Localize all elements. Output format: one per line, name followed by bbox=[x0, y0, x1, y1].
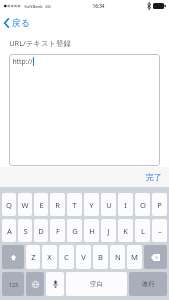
button[interactable]: Z bbox=[26, 245, 40, 269]
button[interactable]: H bbox=[84, 219, 99, 242]
staticText: U bbox=[106, 200, 112, 210]
button[interactable]: Dictation bbox=[46, 272, 64, 296]
button[interactable]: – bbox=[152, 219, 167, 242]
staticText: Y bbox=[89, 200, 94, 210]
button[interactable]: 空白 bbox=[66, 272, 127, 296]
staticText: D bbox=[38, 226, 44, 236]
staticText: 完了 bbox=[146, 172, 162, 182]
button[interactable]: S bbox=[18, 219, 32, 242]
staticText: A bbox=[7, 226, 12, 236]
staticText: E bbox=[39, 200, 44, 210]
staticText: O bbox=[140, 200, 146, 210]
button[interactable]: E bbox=[34, 193, 48, 216]
button[interactable]: http:// bbox=[9, 54, 160, 166]
button[interactable]: X bbox=[42, 245, 57, 269]
button[interactable]: G bbox=[67, 219, 82, 242]
staticText: V bbox=[81, 252, 86, 262]
staticText: Z bbox=[31, 252, 36, 262]
button[interactable]: K bbox=[118, 219, 133, 242]
staticText: X bbox=[47, 252, 52, 262]
button[interactable]: M bbox=[127, 245, 142, 269]
staticText: F bbox=[56, 226, 60, 236]
button[interactable]: N bbox=[110, 245, 125, 269]
staticText: 4G bbox=[45, 3, 51, 9]
staticText: 空白 bbox=[90, 280, 103, 288]
button[interactable]: W bbox=[18, 193, 32, 216]
button[interactable]: Q bbox=[2, 193, 16, 216]
button[interactable]: P bbox=[152, 193, 167, 216]
staticText: H bbox=[89, 226, 95, 236]
button[interactable]: D bbox=[34, 219, 48, 242]
button[interactable]: Backspace bbox=[144, 245, 167, 269]
button[interactable]: T bbox=[67, 193, 82, 216]
staticText: G bbox=[72, 226, 78, 236]
staticText: – bbox=[158, 226, 162, 236]
staticText: W bbox=[21, 200, 29, 210]
staticText: 改行 bbox=[142, 280, 155, 288]
staticText: L bbox=[141, 226, 145, 236]
staticText: S bbox=[23, 226, 28, 236]
staticText: 123 bbox=[9, 281, 18, 288]
button[interactable]: O bbox=[135, 193, 150, 216]
staticText: Q bbox=[6, 200, 12, 210]
button[interactable]: R bbox=[50, 193, 65, 216]
staticText: R bbox=[55, 200, 60, 210]
button[interactable]: 改行 bbox=[129, 272, 167, 296]
button[interactable]: J bbox=[101, 219, 116, 242]
staticText: N bbox=[115, 252, 121, 262]
staticText: 戻る bbox=[11, 17, 30, 28]
staticText: URL/テキスト登録 bbox=[9, 38, 71, 48]
button[interactable]: I bbox=[118, 193, 133, 216]
staticText: J bbox=[107, 226, 110, 236]
button[interactable]: Shift bbox=[2, 245, 24, 269]
staticText: C bbox=[64, 252, 69, 262]
button[interactable]: Y bbox=[84, 193, 99, 216]
button[interactable]: L bbox=[135, 219, 150, 242]
button[interactable]: B bbox=[93, 245, 108, 269]
staticText: B bbox=[98, 252, 103, 262]
staticText: http:// bbox=[12, 57, 33, 66]
button[interactable]: F bbox=[50, 219, 65, 242]
button[interactable]: C bbox=[59, 245, 74, 269]
button[interactable]: Numbers bbox=[2, 272, 24, 296]
staticText: I bbox=[124, 200, 127, 210]
button[interactable]: 完了 bbox=[139, 169, 169, 185]
button[interactable]: 戻る bbox=[0, 14, 38, 31]
button[interactable]: U bbox=[101, 193, 116, 216]
staticText: P bbox=[157, 200, 162, 210]
staticText: M bbox=[131, 252, 138, 262]
staticText: 16:34 bbox=[92, 3, 105, 9]
staticText: T bbox=[72, 200, 77, 210]
button[interactable]: Switch keyboard bbox=[26, 272, 44, 296]
button[interactable]: V bbox=[76, 245, 91, 269]
staticText: SoftBank bbox=[24, 3, 43, 9]
button[interactable]: A bbox=[2, 219, 16, 242]
staticText: K bbox=[123, 226, 128, 236]
